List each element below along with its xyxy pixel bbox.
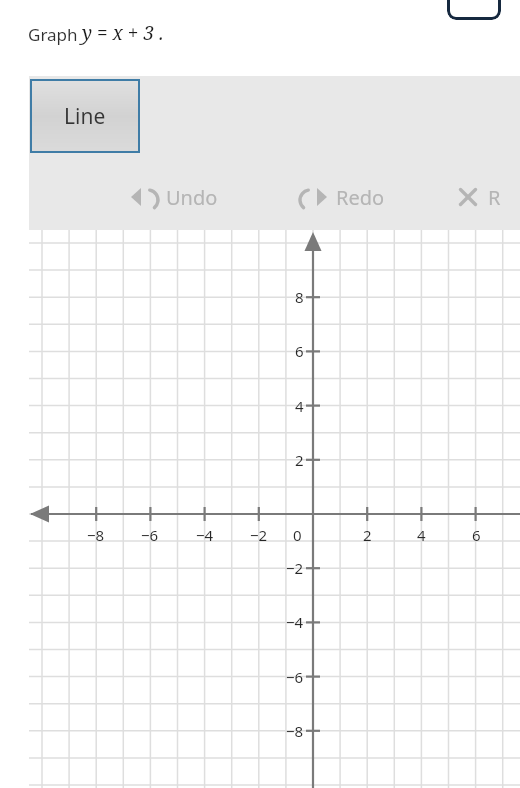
staticText: 4 [417, 525, 426, 545]
button[interactable]: R [455, 177, 520, 217]
staticText: 8 [295, 287, 304, 307]
staticText: −6 [141, 525, 159, 545]
staticText: 6 [472, 525, 481, 545]
staticText: Line [64, 102, 106, 131]
button[interactable]: Line [30, 79, 140, 153]
staticText: 2 [295, 450, 304, 470]
staticText: 0 [293, 525, 302, 545]
staticText: Redo [336, 184, 385, 211]
staticText: −4 [286, 612, 304, 632]
staticText: −8 [286, 721, 304, 741]
button[interactable]: Redo [300, 177, 412, 217]
staticText: −2 [250, 525, 268, 545]
staticText: Undo [166, 184, 218, 211]
staticText: −4 [196, 525, 214, 545]
staticText: Graph [28, 23, 82, 46]
button[interactable]: Expand graph [447, 0, 501, 20]
button[interactable]: Undo [130, 177, 242, 217]
staticText: R [488, 184, 501, 211]
staticText: −2 [286, 558, 304, 578]
staticText: −6 [286, 667, 304, 687]
staticText: 4 [295, 396, 304, 416]
staticText: y = x + 3 . [82, 20, 164, 46]
staticText: −8 [87, 525, 105, 545]
staticText: 2 [363, 525, 372, 545]
staticText: 6 [295, 341, 304, 361]
